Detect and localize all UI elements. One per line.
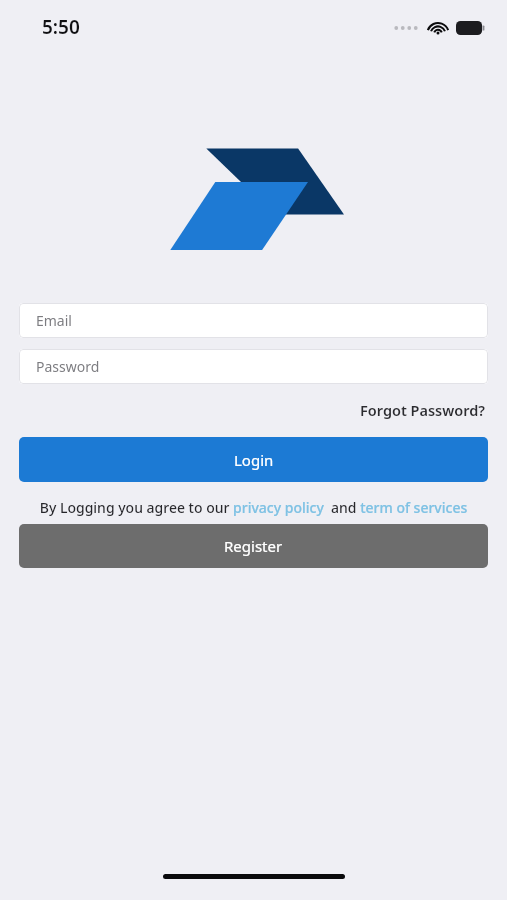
button[interactable]: By Logging you agree to our privacy poli… bbox=[19, 498, 488, 517]
staticText: Login bbox=[234, 450, 274, 470]
button[interactable]: Password bbox=[19, 349, 488, 384]
staticText: Forgot Password? bbox=[360, 400, 486, 420]
staticText: 5:50 bbox=[42, 14, 80, 40]
button[interactable]: Login bbox=[19, 437, 488, 482]
button[interactable]: Email bbox=[19, 303, 488, 338]
staticText: Email bbox=[36, 311, 72, 330]
button[interactable]: Register bbox=[19, 524, 488, 568]
button[interactable]: Forgot Password? bbox=[358, 398, 488, 422]
staticText: Register bbox=[224, 536, 283, 556]
staticText: Password bbox=[36, 357, 100, 376]
